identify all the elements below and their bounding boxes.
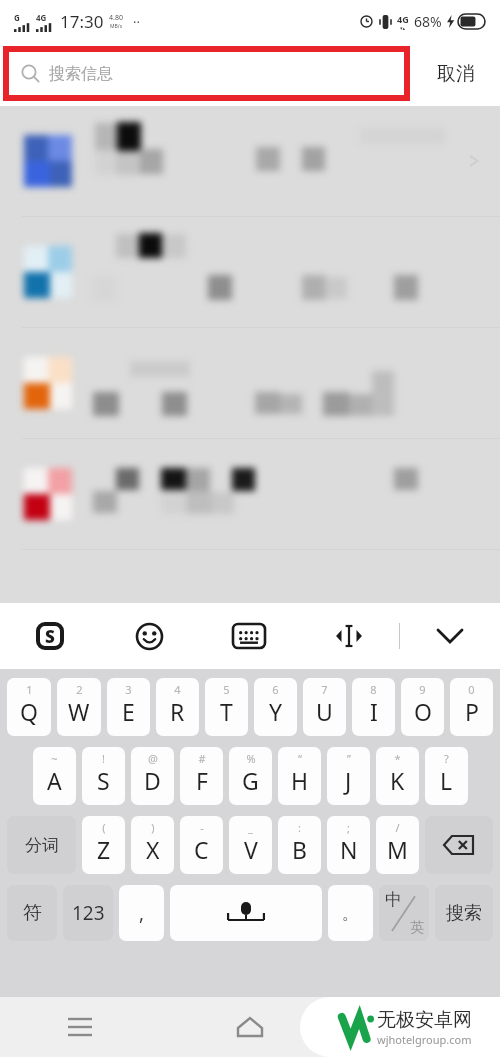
staticText: 17:30 bbox=[60, 10, 104, 33]
button[interactable]: ! bbox=[82, 747, 125, 805]
staticText: 中 bbox=[385, 889, 402, 910]
staticText: 9 bbox=[419, 682, 426, 697]
button[interactable]: Emoji bbox=[99, 603, 199, 669]
staticText: D bbox=[144, 765, 161, 796]
staticText: A bbox=[47, 765, 62, 796]
staticText: MB/s bbox=[110, 23, 123, 30]
staticText: 3 bbox=[125, 682, 132, 697]
button[interactable]: 。 bbox=[328, 885, 373, 941]
button[interactable]: ( bbox=[82, 816, 125, 874]
button[interactable]: 1 bbox=[7, 678, 51, 736]
staticText: M bbox=[387, 834, 408, 865]
staticText: P bbox=[465, 696, 479, 727]
staticText: _ bbox=[248, 820, 253, 835]
button[interactable]: 搜索信息 bbox=[21, 52, 404, 95]
staticText: T bbox=[220, 696, 233, 727]
staticText: 123 bbox=[72, 900, 105, 926]
staticText: 4 bbox=[174, 682, 181, 697]
button[interactable]: 2 bbox=[57, 678, 101, 736]
button[interactable]: ) bbox=[131, 816, 174, 874]
staticText: Q bbox=[20, 696, 38, 727]
button[interactable]: Switch keyboard layout bbox=[199, 603, 299, 669]
button[interactable]: 取消 bbox=[412, 42, 500, 106]
staticText: K bbox=[390, 765, 405, 796]
button[interactable]: 8 bbox=[352, 678, 395, 736]
button[interactable]: 4 bbox=[156, 678, 199, 736]
staticText: # bbox=[198, 751, 206, 766]
button[interactable]: , bbox=[119, 885, 164, 941]
button[interactable]: 中 bbox=[379, 885, 429, 941]
staticText: 4G bbox=[36, 12, 47, 23]
staticText: V bbox=[244, 834, 258, 865]
staticText: 分词 bbox=[25, 835, 59, 856]
staticText: ! bbox=[102, 751, 105, 766]
button[interactable]: # bbox=[180, 747, 223, 805]
staticText: J bbox=[345, 765, 352, 796]
staticText: ) bbox=[151, 820, 155, 835]
button[interactable]: 123 bbox=[63, 885, 113, 941]
button[interactable]: : bbox=[278, 816, 321, 874]
button[interactable]: 9 bbox=[401, 678, 444, 736]
button[interactable]: 0 bbox=[450, 678, 493, 736]
staticText: @ bbox=[148, 751, 158, 766]
button[interactable]: - bbox=[180, 816, 223, 874]
staticText: 英 bbox=[410, 919, 424, 937]
staticText: G bbox=[242, 765, 259, 796]
button[interactable]: Sogou input settings bbox=[0, 603, 99, 669]
button[interactable]: Recent apps bbox=[58, 1005, 102, 1049]
staticText: “ bbox=[298, 751, 302, 766]
staticText: B bbox=[292, 834, 307, 865]
staticText: E bbox=[122, 696, 135, 727]
staticText: ” bbox=[347, 751, 351, 766]
button[interactable]: Hide keyboard bbox=[400, 603, 500, 669]
staticText: L bbox=[440, 765, 453, 796]
staticText: wjhotelgroup.com bbox=[377, 1032, 472, 1047]
staticText: X bbox=[146, 834, 160, 865]
button[interactable] bbox=[0, 106, 500, 216]
button[interactable]: 6 bbox=[254, 678, 297, 736]
staticText: ( bbox=[102, 820, 106, 835]
staticText: - bbox=[200, 820, 204, 835]
staticText: W bbox=[68, 696, 90, 727]
staticText: / bbox=[395, 820, 400, 835]
button[interactable]: ~ bbox=[33, 747, 76, 805]
button[interactable] bbox=[0, 439, 500, 549]
button[interactable]: ” bbox=[327, 747, 370, 805]
button[interactable]: 5 bbox=[205, 678, 248, 736]
button[interactable]: / bbox=[376, 816, 419, 874]
staticText: I bbox=[370, 696, 378, 727]
staticText: ▾▴ bbox=[400, 25, 406, 31]
button[interactable]: Home bbox=[227, 1004, 273, 1050]
staticText: 符 bbox=[23, 901, 42, 925]
button[interactable]: ; bbox=[327, 816, 370, 874]
button[interactable]: “ bbox=[278, 747, 321, 805]
button[interactable]: ? bbox=[425, 747, 468, 805]
staticText: O bbox=[414, 696, 432, 727]
button[interactable]: Space / voice input bbox=[170, 885, 322, 941]
button[interactable]: % bbox=[229, 747, 272, 805]
button[interactable]: 符 bbox=[7, 885, 57, 941]
button[interactable]: Backspace bbox=[425, 816, 493, 874]
staticText: ·· bbox=[133, 13, 140, 31]
staticText: 2 bbox=[76, 682, 83, 697]
staticText: H bbox=[291, 765, 309, 796]
button[interactable]: @ bbox=[131, 747, 174, 805]
staticText: 无极安卓网 bbox=[377, 1008, 472, 1032]
button[interactable]: 3 bbox=[107, 678, 150, 736]
staticText: S bbox=[97, 765, 110, 796]
staticText: G bbox=[14, 12, 20, 23]
staticText: U bbox=[316, 696, 333, 727]
button[interactable]: 分词 bbox=[7, 816, 76, 874]
button[interactable]: _ bbox=[229, 816, 272, 874]
staticText: N bbox=[340, 834, 358, 865]
staticText: % bbox=[246, 751, 256, 766]
button[interactable]: Move cursor bbox=[299, 603, 399, 669]
button[interactable] bbox=[0, 217, 500, 327]
staticText: C bbox=[194, 834, 209, 865]
staticText: 取消 bbox=[437, 62, 475, 86]
button[interactable]: 搜索 bbox=[435, 885, 493, 941]
button[interactable]: 7 bbox=[303, 678, 346, 736]
button[interactable]: * bbox=[376, 747, 419, 805]
staticText: 搜索 bbox=[446, 902, 482, 925]
button[interactable] bbox=[0, 328, 500, 438]
